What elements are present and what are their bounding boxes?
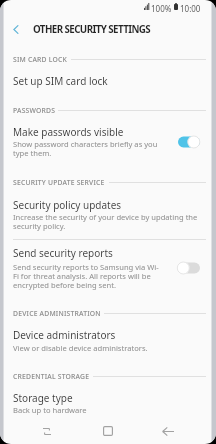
staticText: Storage type	[13, 391, 73, 405]
staticText: SECURITY UPDATE SERVICE	[13, 178, 105, 187]
button[interactable]: Recent apps	[29, 418, 65, 444]
staticText: Device administrators	[13, 328, 116, 342]
staticText: 10:00	[180, 3, 201, 14]
staticText: Make passwords visible	[13, 125, 124, 139]
staticText: Security policy updates	[13, 198, 122, 212]
staticText: Back up to hardware	[13, 405, 87, 415]
staticText: 100%	[151, 3, 172, 14]
staticText: Show password characters briefly as you …	[13, 139, 158, 159]
button[interactable]: Make passwords visible	[13, 125, 158, 139]
button[interactable]: Security policy updates	[13, 198, 201, 212]
button[interactable]: Set up SIM card lock	[13, 74, 201, 88]
staticText: View or disable device administrators.	[13, 343, 148, 353]
staticText: Set up SIM card lock	[13, 74, 108, 88]
button[interactable]: Switch on	[174, 133, 204, 151]
staticText: PASSWORDS	[13, 106, 56, 115]
button[interactable]: Device administrators	[13, 328, 201, 342]
button[interactable]: Switch off	[174, 259, 204, 277]
staticText: Send security reports	[13, 246, 113, 260]
button[interactable]: Back	[150, 418, 186, 444]
button[interactable]: Home	[90, 418, 126, 444]
staticText: CREDENTIAL STORAGE	[13, 372, 90, 381]
button[interactable]: Send security reports	[13, 246, 158, 260]
staticText: OTHER SECURITY SETTINGS	[33, 23, 151, 36]
button[interactable]: Storage type	[13, 391, 201, 405]
button[interactable]: Navigate up	[3, 16, 29, 42]
staticText: DEVICE ADMINISTRATION	[13, 309, 101, 318]
staticText: SIM CARD LOCK	[13, 55, 67, 64]
staticText: Send security reports to Samsung via Wi-…	[13, 262, 159, 291]
staticText: Increase the security of your device by …	[13, 212, 198, 232]
